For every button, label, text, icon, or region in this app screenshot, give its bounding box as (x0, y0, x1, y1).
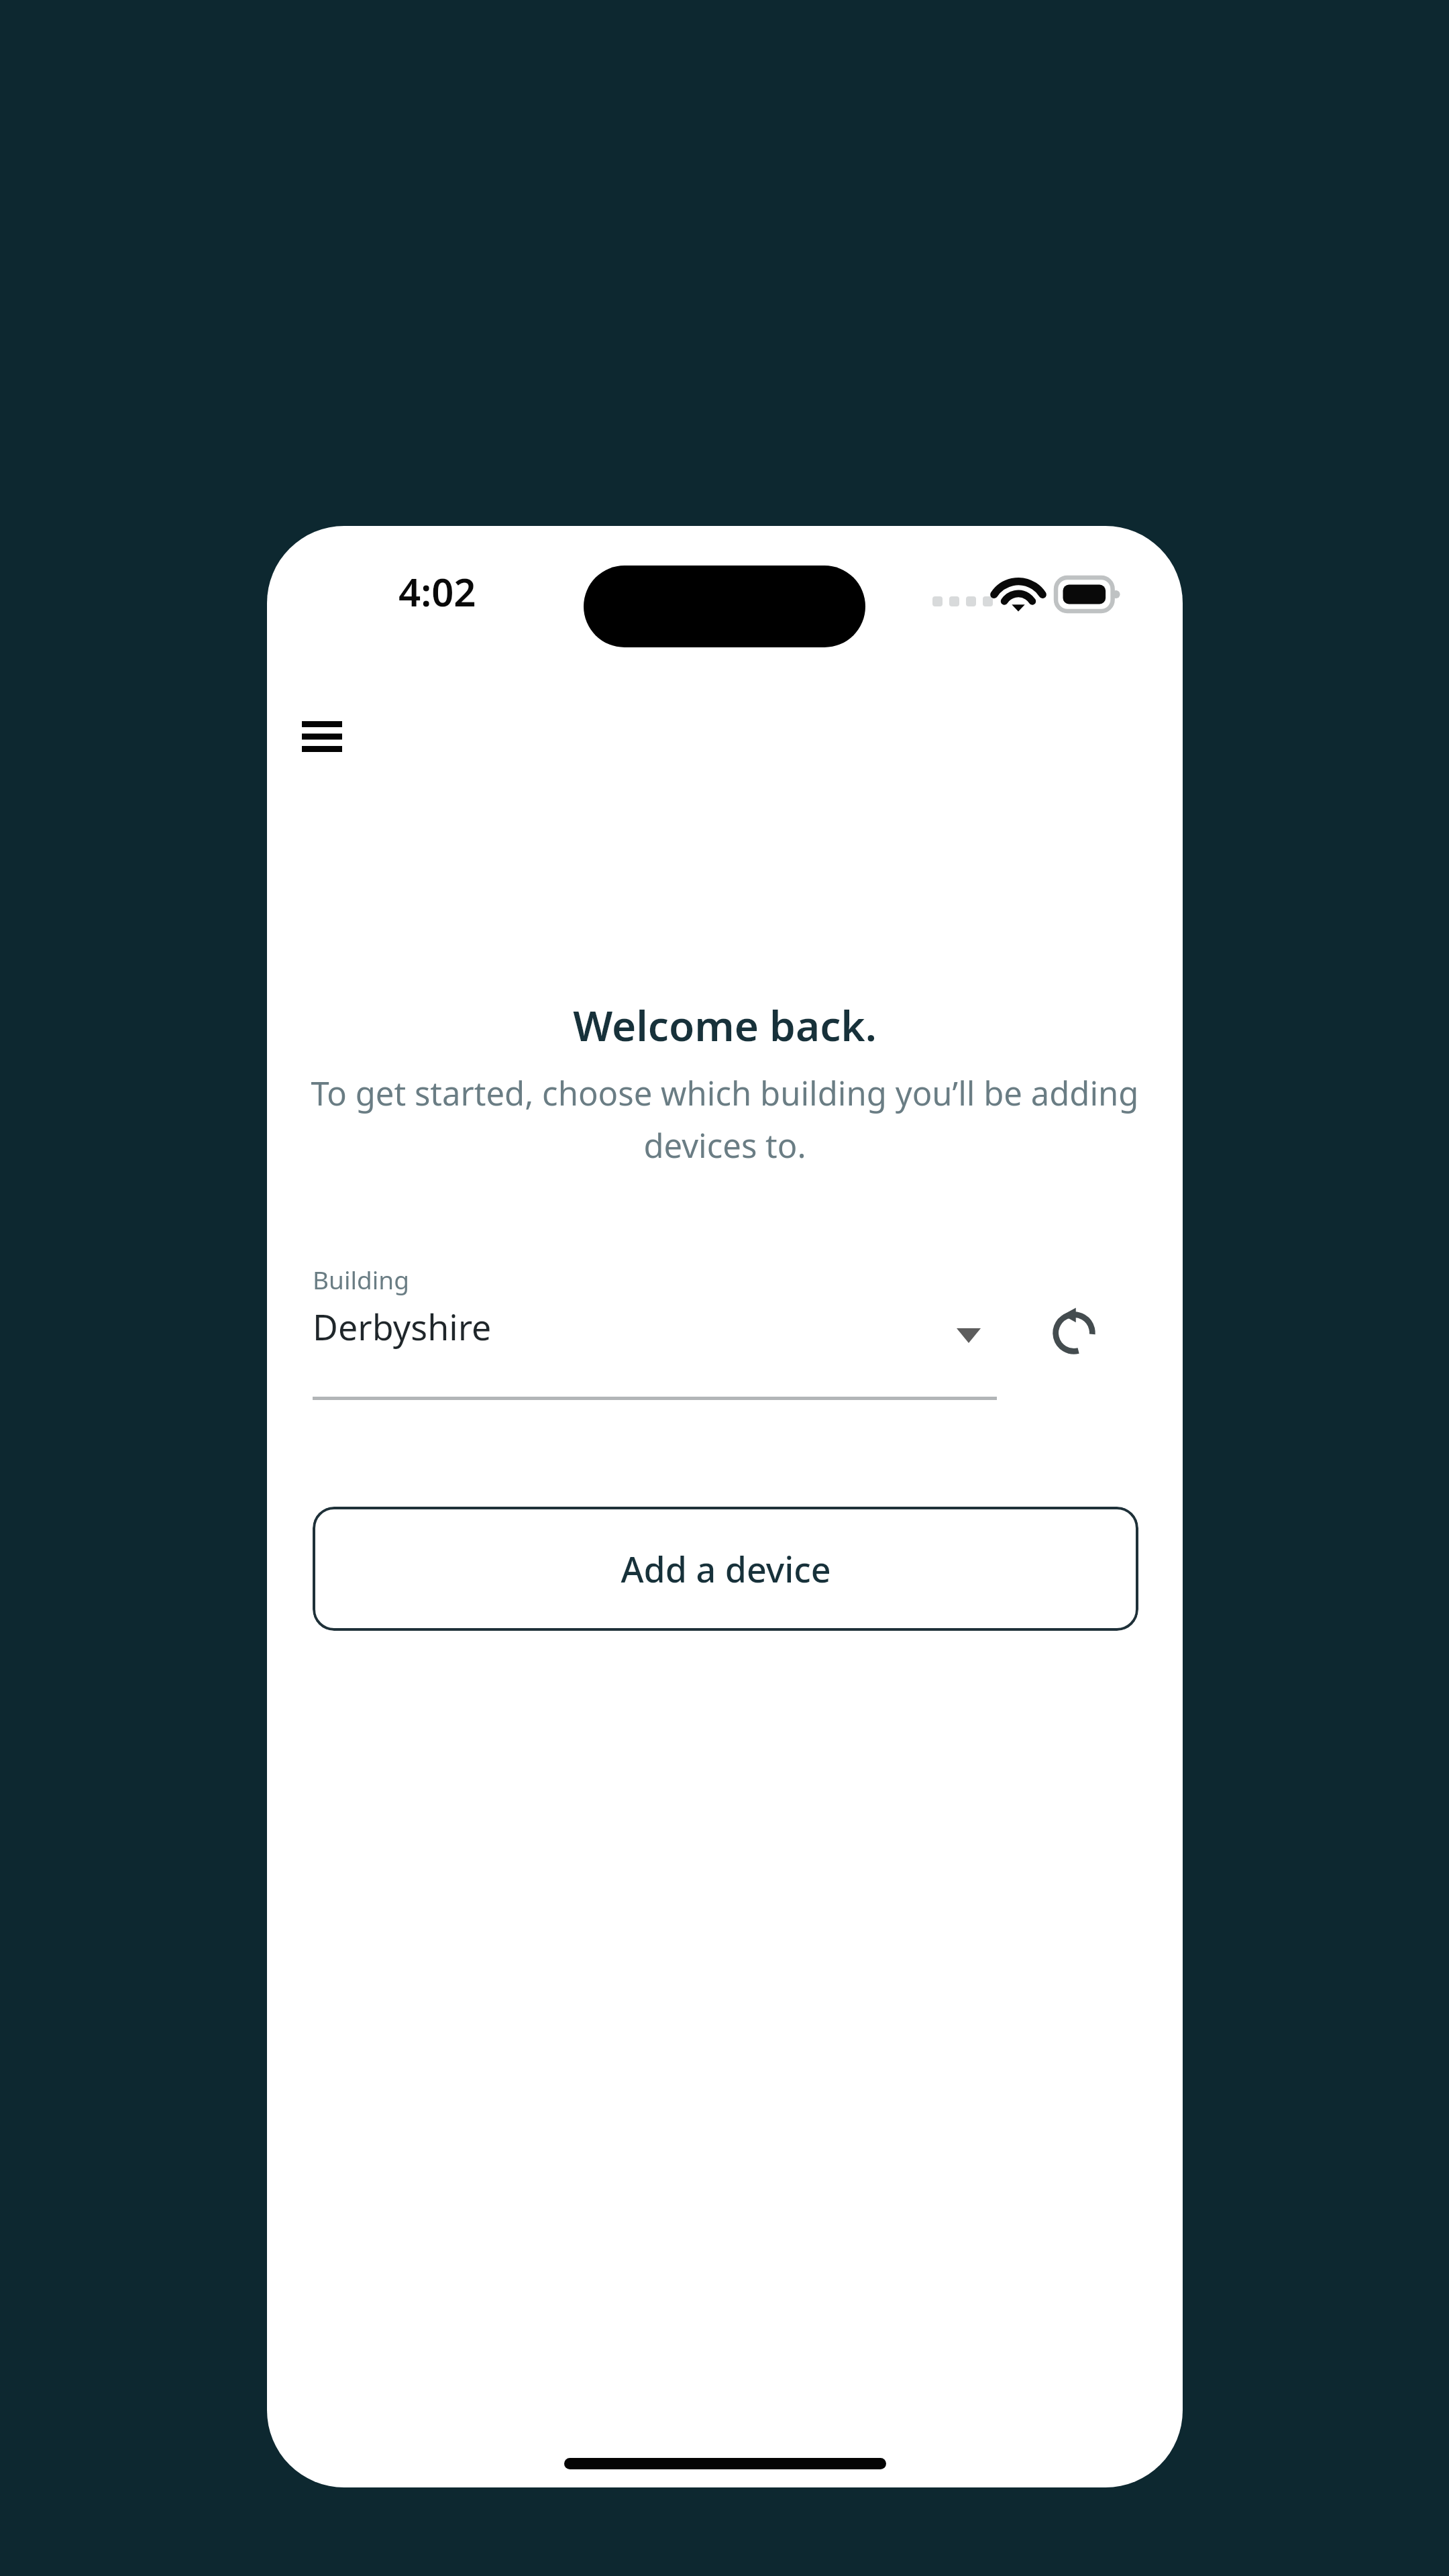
staticText: Building (313, 1263, 409, 1296)
button[interactable]: Refresh buildings (1024, 1283, 1124, 1383)
staticText: To get started, choose which building yo… (309, 1071, 1141, 1168)
staticText: 4:02 (398, 565, 476, 618)
button[interactable]: Building (313, 1263, 997, 1411)
button[interactable]: Add a device (313, 1507, 1138, 1631)
staticText: Welcome back. (573, 997, 877, 1053)
staticText: Add a device (621, 1545, 831, 1593)
staticText: Derbyshire (313, 1303, 492, 1350)
button[interactable]: Open navigation menu (282, 696, 362, 777)
